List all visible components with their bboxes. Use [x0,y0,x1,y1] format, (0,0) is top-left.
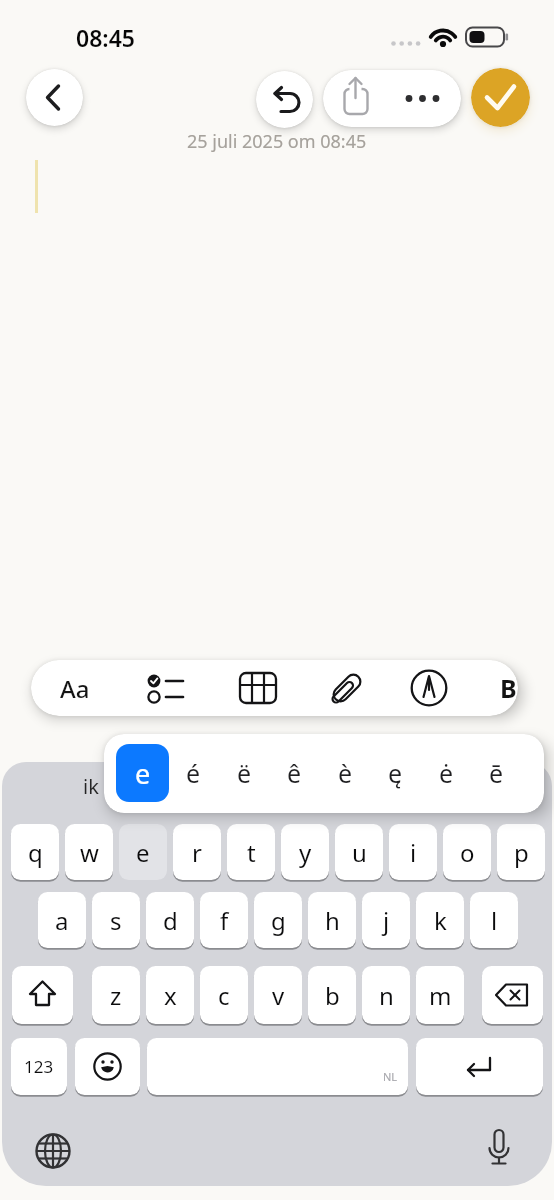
button[interactable]: é [171,746,215,800]
staticText: m [429,979,452,1012]
button[interactable]: p [497,824,545,880]
button[interactable] [323,70,392,127]
button[interactable]: ę [373,746,417,800]
button[interactable]: k [416,892,464,948]
staticText: j [383,904,390,937]
staticText: è [338,756,353,790]
button[interactable]: b [308,966,356,1024]
staticText: ē [489,756,504,790]
button[interactable]: m [416,966,464,1024]
staticText: x [164,979,177,1012]
button[interactable]: z [92,966,140,1024]
button[interactable] [31,1129,75,1173]
button[interactable] [236,666,280,710]
staticText: n [379,979,394,1012]
staticText: z [110,979,122,1012]
button[interactable]: ē [474,746,518,800]
button[interactable]: f [200,892,248,948]
staticText: d [163,904,178,937]
staticText: 25 juli 2025 om 08:45 [187,129,367,154]
button[interactable]: u [335,824,383,880]
button[interactable]: t [227,824,275,880]
button[interactable]: i [389,824,437,880]
staticText: é [186,756,201,790]
staticText: q [28,836,43,869]
staticText: ik [83,773,99,800]
staticText: l [491,904,498,937]
button[interactable] [147,1038,408,1095]
button[interactable] [392,70,461,127]
button[interactable]: q [11,824,59,880]
button[interactable] [477,1124,521,1168]
button[interactable]: h [308,892,356,948]
button[interactable] [471,68,530,127]
button[interactable]: d [146,892,194,948]
button[interactable]: ė [424,746,468,800]
button[interactable]: 123 [11,1038,67,1095]
button[interactable] [482,966,543,1024]
staticText: s [110,904,122,937]
staticText: f [220,904,229,937]
staticText: 123 [24,1055,54,1078]
staticText: y [299,836,312,869]
button[interactable] [256,71,313,128]
button[interactable]: s [92,892,140,948]
button[interactable]: o [443,824,491,880]
button[interactable] [325,666,369,710]
staticText: o [460,836,475,869]
button[interactable]: n [362,966,410,1024]
staticText: ê [287,756,302,790]
button[interactable]: y [281,824,329,880]
button[interactable] [407,666,451,710]
button[interactable]: g [254,892,302,948]
button[interactable]: ë [222,746,266,800]
button[interactable]: c [200,966,248,1024]
button[interactable]: e [116,744,169,802]
button[interactable]: Aa [52,668,98,708]
button[interactable] [416,1038,543,1095]
button[interactable]: v [254,966,302,1024]
button[interactable]: j [362,892,410,948]
button[interactable]: l [470,892,518,948]
staticText: g [271,904,286,937]
button[interactable]: r [173,824,221,880]
staticText: h [325,904,340,937]
staticText: B [500,671,517,705]
staticText: Aa [60,672,90,705]
button[interactable] [75,1038,140,1095]
staticText: 08:45 [76,22,135,52]
button[interactable] [12,966,73,1024]
staticText: a [55,904,69,937]
staticText: v [272,979,285,1012]
button[interactable]: ê [272,746,316,800]
button[interactable]: x [146,966,194,1024]
button[interactable]: è [323,746,367,800]
staticText: e [135,755,151,792]
staticText: w [80,836,99,869]
staticText: e [136,836,150,869]
button[interactable]: B [494,668,522,708]
staticText: k [434,904,447,937]
staticText: t [247,836,256,869]
button[interactable] [142,666,186,710]
button[interactable] [26,69,83,126]
button[interactable]: a [38,892,86,948]
staticText: i [410,836,417,869]
staticText: b [325,979,340,1012]
staticText: ë [237,756,252,790]
button[interactable]: e [119,824,167,880]
staticText: p [514,836,529,869]
button[interactable]: w [65,824,113,880]
staticText: c [218,979,230,1012]
staticText: ė [439,756,454,790]
staticText: NL [383,1069,398,1084]
staticText: r [192,836,202,869]
staticText: u [352,836,367,869]
staticText: ę [388,756,403,790]
